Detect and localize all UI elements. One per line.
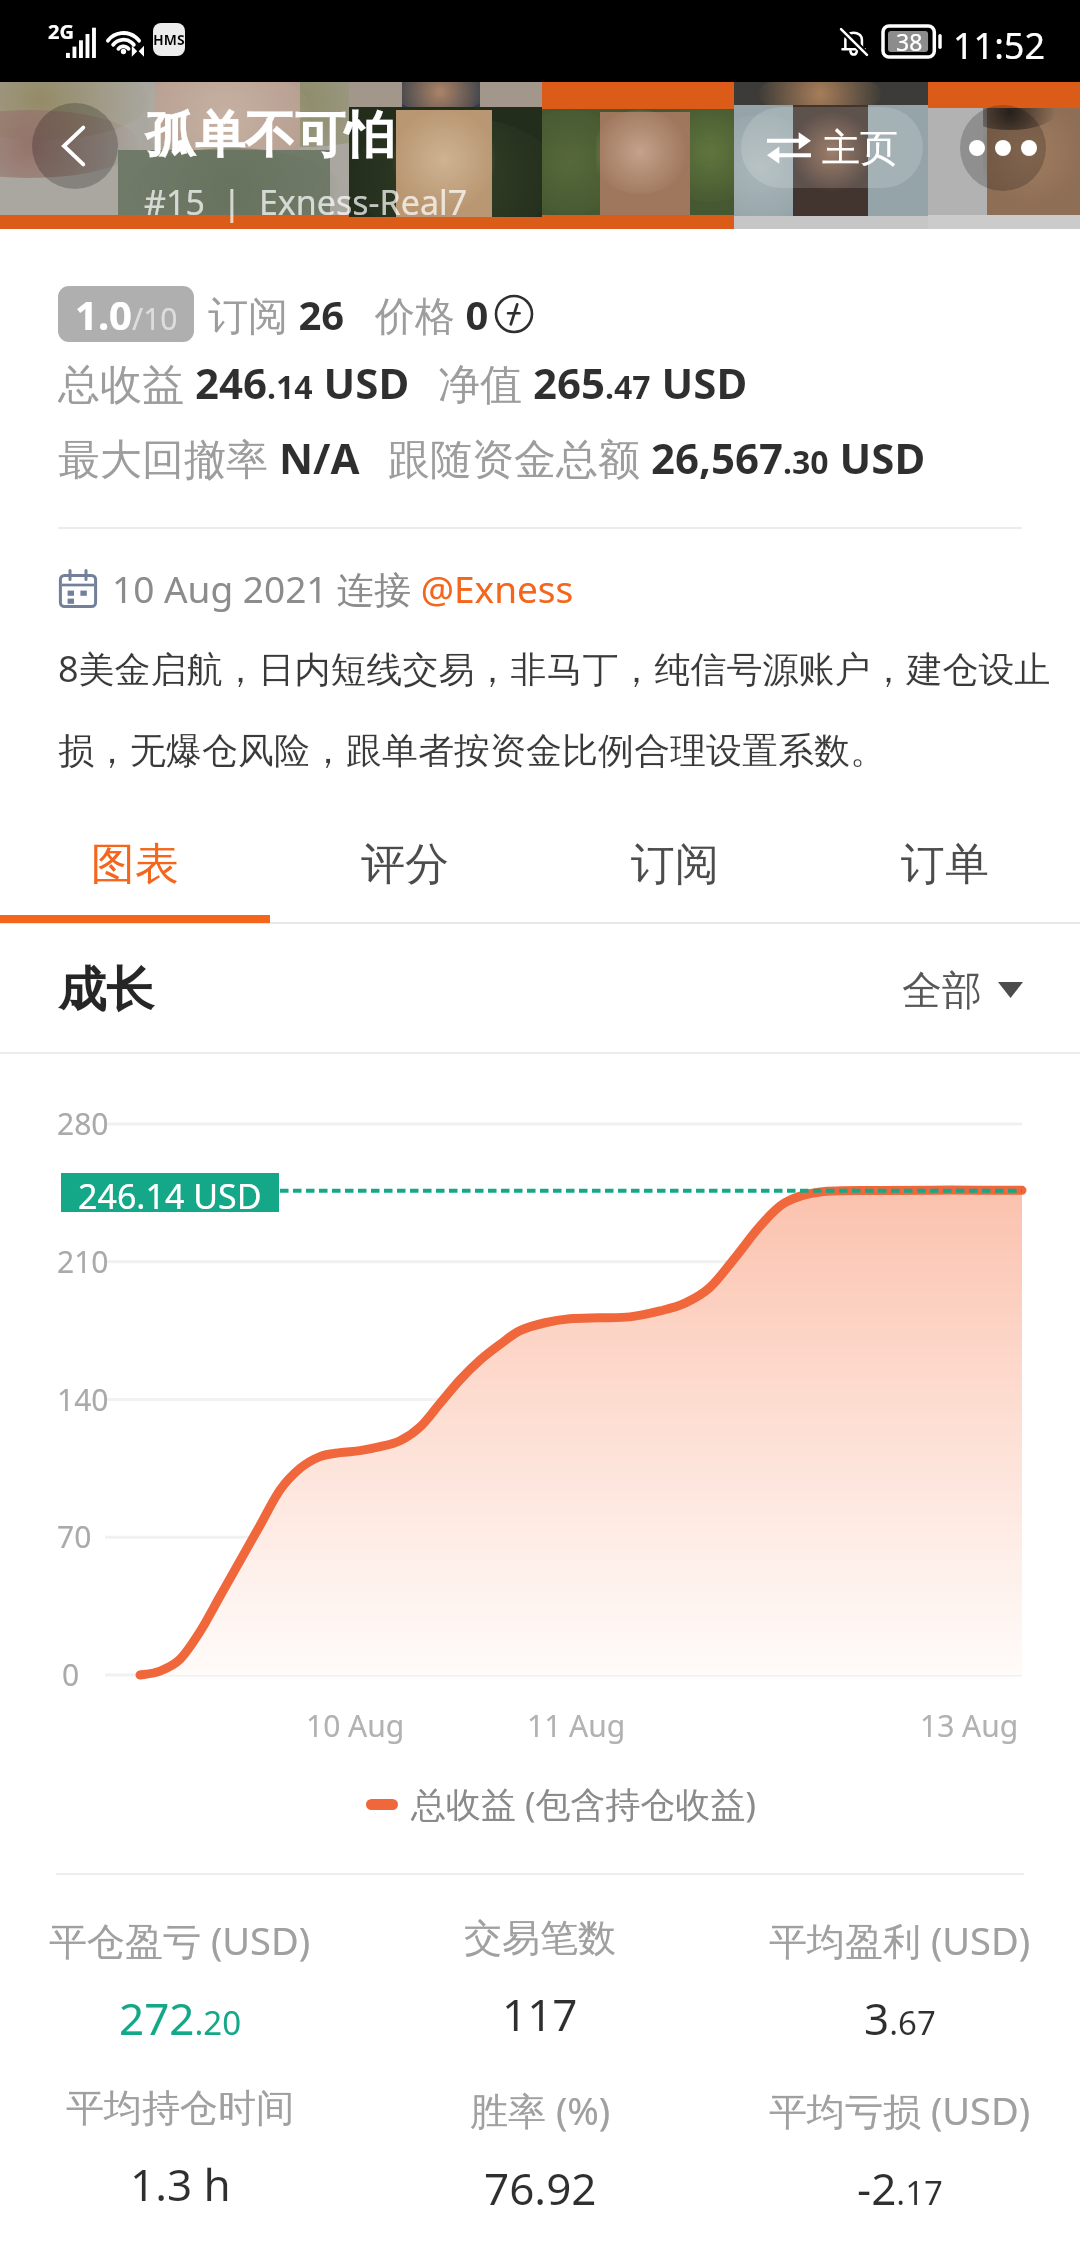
staticText: 3.67	[864, 1988, 936, 2048]
staticText: 全部	[902, 965, 982, 1015]
staticText: 1.0/10	[75, 287, 178, 341]
staticText: 76.92	[484, 2158, 597, 2218]
staticText: 272.20	[119, 1988, 242, 2048]
staticText: 跟随资金总额 26,567.30 USD	[388, 429, 926, 486]
staticText: 70	[57, 1516, 92, 1557]
staticText: 总收益 (包含持仓收益)	[411, 1780, 757, 1828]
staticText: 0	[62, 1654, 80, 1695]
staticText: 246.14 USD	[78, 1173, 262, 1212]
button[interactable]: 订阅	[540, 812, 810, 916]
staticText: 图表	[91, 837, 179, 892]
staticText: 11:52	[953, 21, 1046, 70]
staticText: 主页	[822, 124, 898, 172]
button[interactable]: Back	[32, 103, 118, 189]
button[interactable]: More options	[960, 105, 1046, 191]
staticText: 胜率 (%)	[470, 2084, 611, 2136]
staticText: 11 Aug	[527, 1705, 626, 1746]
staticText: 孤单不可怕	[145, 104, 395, 167]
staticText: 总收益 246.14 USD	[58, 354, 410, 411]
staticText: 8美金启航，日内短线交易，非马丁，纯信号源账户，建仓设止损，无爆仓风险，跟单者按…	[58, 644, 1062, 773]
staticText: 140	[57, 1379, 109, 1420]
staticText: 评分	[361, 837, 449, 892]
staticText: 价格 0	[375, 287, 489, 342]
staticText: HMS	[153, 30, 185, 49]
staticText: 净值 265.47 USD	[438, 354, 748, 411]
button[interactable]: 订单	[810, 812, 1080, 916]
button[interactable]: 全部	[902, 965, 1023, 1015]
button[interactable]: 图表	[0, 812, 270, 916]
staticText: 210	[57, 1241, 109, 1282]
staticText: 交易笔数	[464, 1914, 616, 1962]
staticText: 成长	[58, 960, 154, 1020]
staticText: 平均持仓时间	[66, 2084, 294, 2132]
staticText: 订阅	[631, 837, 719, 892]
staticText: 38	[896, 26, 923, 57]
staticText: 13 Aug	[920, 1705, 1019, 1746]
staticText: 平仓盈亏 (USD)	[49, 1914, 311, 1966]
staticText: #15 | Exness-Real7	[144, 179, 468, 225]
staticText: 10 Aug 2021 连接 @Exness	[112, 563, 574, 614]
staticText: 2G	[48, 18, 74, 45]
staticText: 1.3 h	[130, 2154, 231, 2214]
staticText: 订阅 26	[208, 287, 345, 342]
staticText: -2.17	[857, 2158, 943, 2218]
staticText: 10 Aug	[306, 1705, 405, 1746]
staticText: 订单	[901, 837, 989, 892]
staticText: 117	[502, 1984, 578, 2044]
button[interactable]: 评分	[270, 812, 540, 916]
staticText: 最大回撤率 N/A	[58, 429, 360, 486]
staticText: 平均盈利 (USD)	[769, 1914, 1031, 1966]
staticText: 280	[57, 1103, 109, 1144]
staticText: 平均亏损 (USD)	[769, 2084, 1031, 2136]
button[interactable]: 主页	[741, 107, 923, 188]
